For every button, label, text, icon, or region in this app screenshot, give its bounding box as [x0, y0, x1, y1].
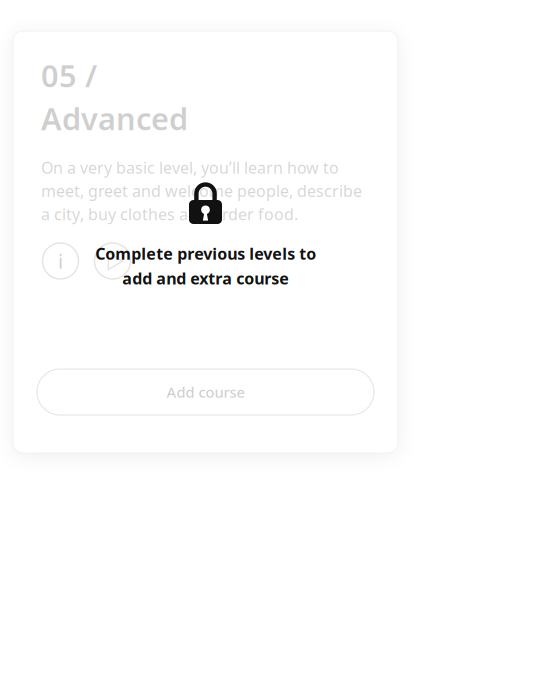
staticText: 05 /	[41, 55, 97, 96]
staticText: Advanced	[41, 98, 188, 139]
staticText: i	[58, 248, 63, 274]
button[interactable]: Play	[94, 243, 130, 279]
staticText: Add course	[166, 382, 244, 402]
button[interactable]: Information	[42, 243, 78, 279]
button[interactable]: Add course	[37, 369, 374, 415]
staticText: On a very basic level, you’ll learn how …	[41, 157, 362, 225]
staticText: Complete previous levels to add and extr…	[95, 243, 316, 289]
